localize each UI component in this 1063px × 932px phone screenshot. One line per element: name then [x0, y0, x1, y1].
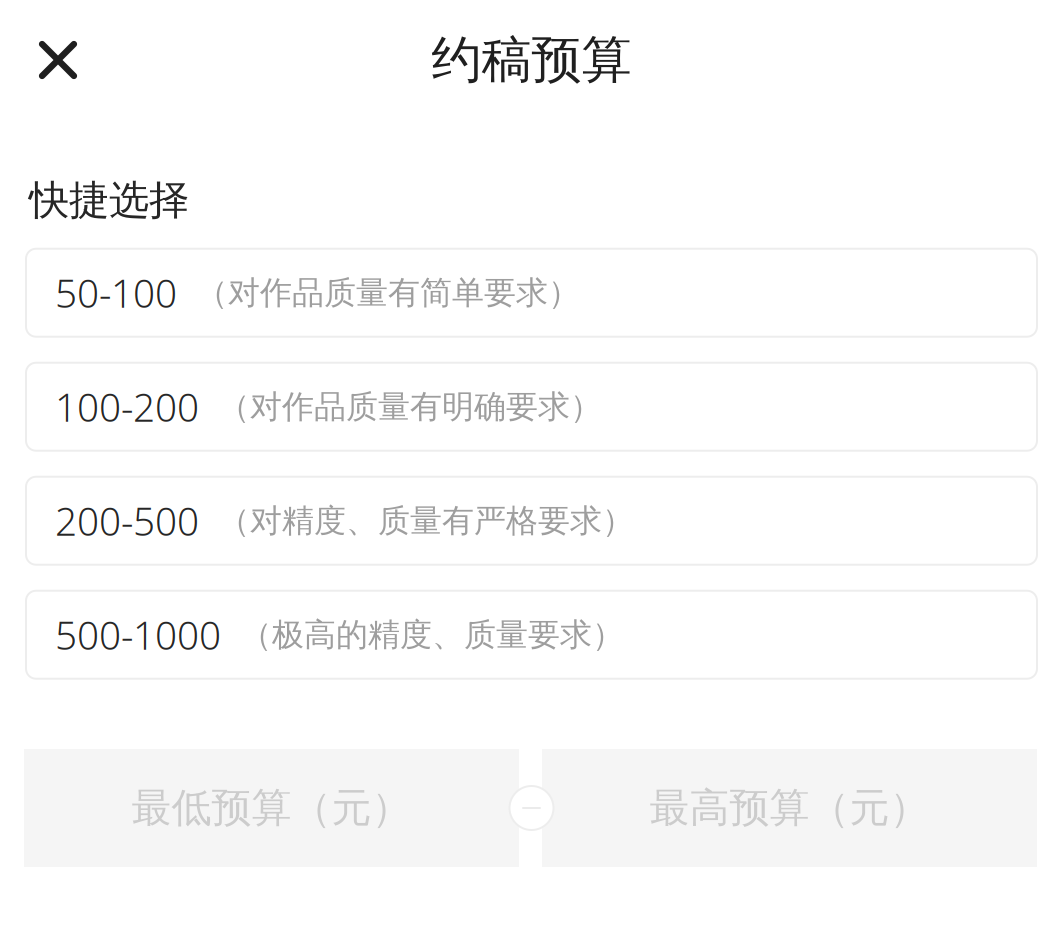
staticText: 100-200	[55, 381, 199, 432]
staticText: 快捷选择	[29, 175, 189, 226]
button[interactable]: Close	[0, 21, 97, 99]
button[interactable]: 200-500	[26, 477, 1037, 565]
staticText: （对精度、质量有严格要求）	[218, 501, 634, 540]
button[interactable]: 50-100	[26, 249, 1037, 337]
staticText: 最低预算（元）	[131, 783, 411, 832]
staticText: 约稿预算	[431, 28, 631, 92]
staticText: （极高的精度、质量要求）	[240, 615, 624, 654]
button[interactable]: 100-200	[26, 363, 1037, 451]
staticText: 200-500	[55, 495, 199, 546]
staticText: （对作品质量有简单要求）	[196, 273, 580, 312]
button[interactable]: 最高预算（元）	[542, 749, 1037, 867]
button[interactable]: 500-1000	[26, 591, 1037, 679]
staticText: 50-100	[55, 267, 177, 318]
staticText: 500-1000	[55, 609, 221, 660]
staticText: （对作品质量有明确要求）	[218, 387, 602, 426]
button[interactable]: 最低预算（元）	[24, 749, 519, 867]
staticText: 最高预算（元）	[649, 783, 929, 832]
